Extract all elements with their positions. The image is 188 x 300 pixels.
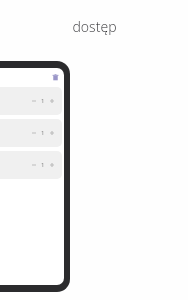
button[interactable]: Zmniejsz xyxy=(0,87,62,115)
button[interactable]: Usuń xyxy=(51,73,60,82)
button[interactable]: Zmniejsz xyxy=(0,151,62,179)
button[interactable]: Zmniejsz xyxy=(30,128,38,138)
button[interactable]: Zmniejsz xyxy=(0,119,62,147)
button[interactable]: Zwiększ xyxy=(48,96,56,106)
button[interactable]: Zwiększ xyxy=(48,160,56,170)
button[interactable]: Zmniejsz xyxy=(30,160,38,170)
button[interactable]: Zwiększ xyxy=(48,128,56,138)
button[interactable]: dostęp xyxy=(0,17,188,36)
staticText: 1 xyxy=(41,129,45,137)
staticText: 1 xyxy=(41,97,45,105)
button[interactable]: Zmniejsz xyxy=(30,96,38,106)
staticText: dostęp xyxy=(72,17,117,36)
staticText: 1 xyxy=(41,161,45,169)
